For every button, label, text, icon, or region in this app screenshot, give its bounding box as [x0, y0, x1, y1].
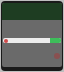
button[interactable]	[3, 38, 61, 43]
button[interactable]: Add	[54, 53, 60, 59]
